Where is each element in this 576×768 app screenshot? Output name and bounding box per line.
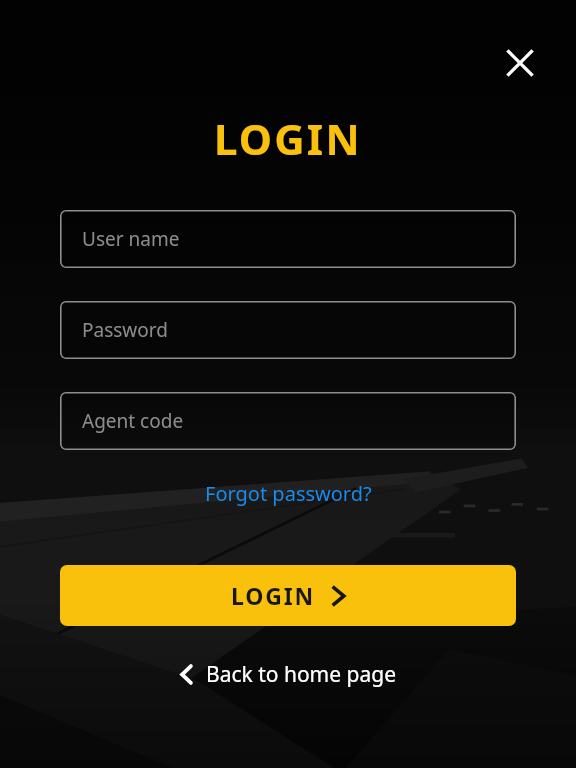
button[interactable]: Close: [490, 33, 550, 93]
button[interactable]: User name: [60, 210, 516, 268]
button[interactable]: Back to home page: [0, 660, 576, 689]
button[interactable]: Password: [60, 301, 516, 359]
staticText: Back to home page: [206, 660, 397, 689]
button[interactable]: Agent code: [60, 392, 516, 450]
staticText: LOGIN: [214, 110, 362, 167]
staticText: Agent code: [82, 408, 184, 434]
button[interactable]: Forgot password?: [191, 474, 386, 513]
staticText: Password: [82, 317, 168, 343]
staticText: User name: [82, 226, 180, 252]
staticText: Forgot password?: [205, 480, 372, 507]
button[interactable]: LOGIN: [60, 565, 516, 626]
staticText: LOGIN: [231, 580, 315, 611]
